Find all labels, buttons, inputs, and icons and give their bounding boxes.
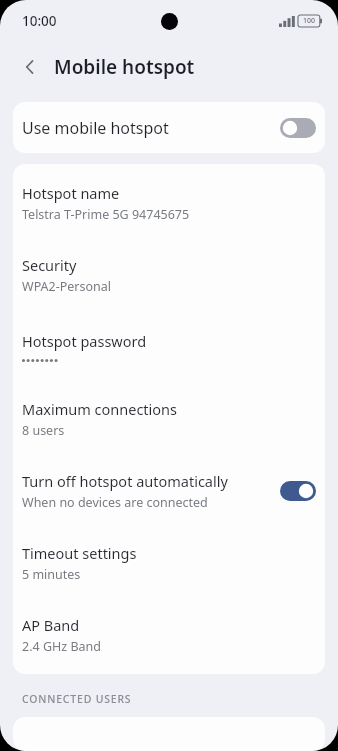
button[interactable]: Maximum connections	[13, 383, 325, 455]
button[interactable]: Timeout settings	[13, 527, 325, 599]
staticText: 5 minutes	[22, 566, 81, 583]
staticText: 2.4 GHz Band	[22, 638, 101, 655]
button[interactable]: Security	[13, 239, 325, 311]
button[interactable]: Hotspot name	[13, 167, 325, 239]
button[interactable]: Back	[10, 47, 50, 87]
staticText: Telstra T-Prime 5G 94745675	[22, 206, 190, 223]
button[interactable]	[13, 717, 325, 751]
staticText: AP Band	[22, 615, 80, 635]
staticText: 10:00	[22, 12, 57, 30]
staticText: Hotspot password	[22, 331, 147, 351]
button[interactable]: Turn off hotspot automatically	[13, 455, 325, 527]
staticText: Use mobile hotspot	[22, 117, 280, 139]
staticText: 8 users	[22, 422, 65, 439]
staticText: Maximum connections	[22, 399, 177, 419]
staticText: Mobile hotspot	[54, 54, 195, 80]
button[interactable]: Use mobile hotspot	[13, 102, 325, 153]
button[interactable]: AP Band	[13, 599, 325, 671]
staticText: 100	[303, 16, 316, 26]
staticText: When no devices are connected	[22, 494, 208, 511]
staticText: Security	[22, 255, 77, 275]
button[interactable]: Hotspot password	[13, 311, 325, 383]
staticText: Timeout settings	[22, 543, 137, 563]
staticText: WPA2-Personal	[22, 278, 112, 295]
staticText: Hotspot name	[22, 183, 120, 203]
staticText: CONNECTED USERS	[22, 692, 132, 706]
staticText: Turn off hotspot automatically	[22, 471, 228, 491]
